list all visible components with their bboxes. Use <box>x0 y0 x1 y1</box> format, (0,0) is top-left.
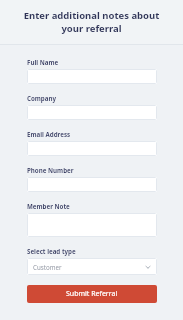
button[interactable] <box>27 141 157 156</box>
staticText: Select lead type <box>27 247 76 255</box>
staticText: Customer <box>33 263 62 271</box>
other: Open lead type dropdown <box>145 264 151 270</box>
staticText: Phone Number <box>27 166 74 174</box>
button[interactable] <box>27 213 157 237</box>
button[interactable]: Customer <box>27 258 157 275</box>
staticText: Submit Referral <box>66 289 118 299</box>
staticText: Company <box>27 94 57 102</box>
button[interactable]: Submit Referral <box>27 285 157 303</box>
staticText: Enter additional notes about your referr… <box>16 9 167 35</box>
staticText: Full Name <box>27 58 59 66</box>
staticText: Email Address <box>27 130 71 138</box>
button[interactable] <box>27 69 157 84</box>
button[interactable] <box>27 105 157 120</box>
staticText: Member Note <box>27 202 70 210</box>
button[interactable] <box>27 177 157 192</box>
